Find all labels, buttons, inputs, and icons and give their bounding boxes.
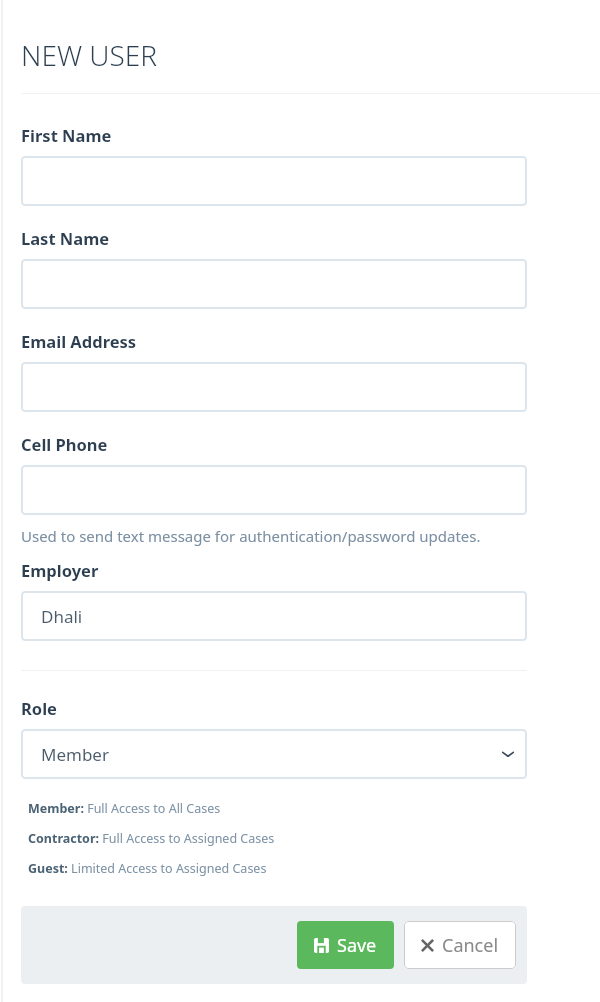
staticText: Role xyxy=(21,697,57,719)
staticText: Member: Full Access to All Cases xyxy=(28,800,221,817)
staticText: NEW USER xyxy=(21,36,158,74)
staticText: First Name xyxy=(21,124,112,146)
button[interactable]: Save xyxy=(297,921,394,969)
button[interactable]: Role xyxy=(21,729,527,779)
button[interactable]: First Name xyxy=(21,156,527,206)
button[interactable]: Cancel xyxy=(404,921,516,969)
staticText: Guest: Limited Access to Assigned Cases xyxy=(28,860,267,877)
staticText: Dhali xyxy=(41,605,83,628)
staticText: Member xyxy=(41,743,109,766)
staticText: Employer xyxy=(21,559,99,581)
staticText: Save xyxy=(337,933,377,958)
staticText: Contractor: Full Access to Assigned Case… xyxy=(28,830,275,847)
button[interactable]: Cell Phone xyxy=(21,465,527,515)
staticText: Used to send text message for authentica… xyxy=(21,526,481,546)
staticText: Cancel xyxy=(442,933,499,958)
button[interactable]: Email Address xyxy=(21,362,527,412)
button[interactable]: Employer xyxy=(21,591,527,641)
staticText: Cell Phone xyxy=(21,433,108,455)
staticText: Last Name xyxy=(21,227,110,249)
button[interactable]: Last Name xyxy=(21,259,527,309)
staticText: Email Address xyxy=(21,330,137,352)
